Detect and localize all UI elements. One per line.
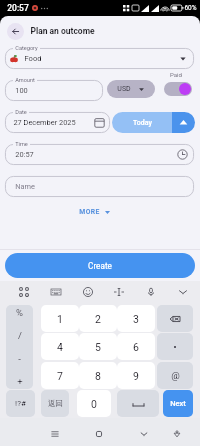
button[interactable]: Hide keyboard — [135, 425, 153, 443]
staticText: Amount — [15, 77, 35, 84]
staticText: 20:57 — [15, 150, 34, 159]
button[interactable]: Voice input — [143, 284, 159, 300]
button[interactable]: 9 — [117, 362, 155, 389]
staticText: 1 — [57, 313, 63, 325]
staticText: Plan an outcome — [30, 26, 95, 36]
button[interactable]: 0 — [77, 390, 111, 417]
button[interactable]: 5 — [79, 333, 117, 360]
staticText: 9 — [133, 370, 139, 382]
button[interactable]: Food — [5, 48, 194, 69]
button[interactable]: Next — [163, 390, 193, 417]
button[interactable]: Create — [5, 253, 195, 278]
staticText: 20:57 — [7, 3, 29, 13]
button[interactable]: 8 — [79, 362, 117, 389]
button[interactable]: Switch input method — [168, 425, 186, 443]
button[interactable]: Paid toggle — [164, 82, 192, 96]
staticText: + — [17, 376, 23, 387]
staticText: Date — [15, 109, 27, 116]
staticText: % — [16, 307, 23, 318]
staticText: Create — [88, 261, 112, 271]
button[interactable]: Hide keyboard — [175, 284, 191, 300]
button[interactable]: @ — [157, 362, 193, 389]
button[interactable]: Space — [117, 390, 159, 417]
button[interactable]: Return — [41, 390, 69, 417]
button[interactable]: Pick date — [94, 117, 105, 128]
staticText: 27 December 2025 — [13, 118, 76, 127]
staticText: Time — [15, 141, 28, 148]
button[interactable]: 7 — [41, 362, 79, 389]
staticText: Category — [15, 45, 38, 52]
staticText: MORE — [79, 208, 100, 216]
button[interactable]: Period — [157, 333, 193, 360]
staticText: USD — [117, 85, 131, 93]
button[interactable]: 3 — [117, 305, 155, 332]
button[interactable]: 4 — [41, 333, 79, 360]
button[interactable]: 6 — [117, 333, 155, 360]
other: Backspace — [170, 315, 180, 323]
button[interactable]: Today — [112, 112, 172, 133]
staticText: 5 — [95, 341, 101, 353]
staticText: 返回 — [48, 399, 63, 408]
button[interactable]: Backspace — [157, 305, 193, 332]
staticText: 2 — [95, 313, 101, 325]
button[interactable]: Recents — [46, 425, 64, 443]
button[interactable]: Pick time — [177, 149, 188, 160]
button[interactable]: % — [6, 305, 33, 389]
staticText: 8 — [95, 370, 101, 382]
button[interactable]: More date options — [172, 112, 195, 133]
staticText: !?# — [15, 399, 26, 408]
button[interactable]: Apps — [16, 284, 32, 300]
staticText: Next — [170, 399, 186, 408]
other: Period — [173, 345, 177, 349]
button[interactable]: 2 — [79, 305, 117, 332]
button[interactable]: 27 December 2025 — [5, 112, 110, 133]
button[interactable]: Text edit — [111, 284, 127, 300]
staticText: / — [18, 330, 22, 341]
button[interactable]: Category dropdown — [178, 54, 188, 64]
staticText: - — [18, 353, 21, 364]
button[interactable]: Home — [90, 425, 108, 443]
staticText: Name — [15, 182, 35, 191]
staticText: 100 — [15, 86, 28, 95]
staticText: Paid — [170, 71, 182, 78]
staticText: Today — [133, 119, 152, 127]
button[interactable]: Back — [7, 23, 24, 40]
staticText: @ — [171, 370, 180, 381]
button[interactable]: Name — [5, 176, 194, 197]
staticText: 7 — [57, 370, 63, 382]
button[interactable]: 1 — [41, 305, 79, 332]
button[interactable]: !?# — [6, 390, 35, 417]
button[interactable]: MORE — [79, 206, 111, 218]
button[interactable]: 100 — [5, 80, 103, 101]
staticText: 6 — [133, 341, 139, 353]
button[interactable]: Keyboard layout — [48, 284, 64, 300]
staticText: Food — [24, 54, 42, 63]
button[interactable]: 20:57 — [5, 144, 194, 165]
staticText: 4 — [57, 341, 63, 353]
button[interactable]: USD — [107, 80, 155, 98]
staticText: 60% — [184, 4, 197, 12]
staticText: 0 — [91, 398, 97, 410]
staticText: 3 — [133, 313, 139, 325]
button[interactable]: Emoji — [80, 284, 96, 300]
